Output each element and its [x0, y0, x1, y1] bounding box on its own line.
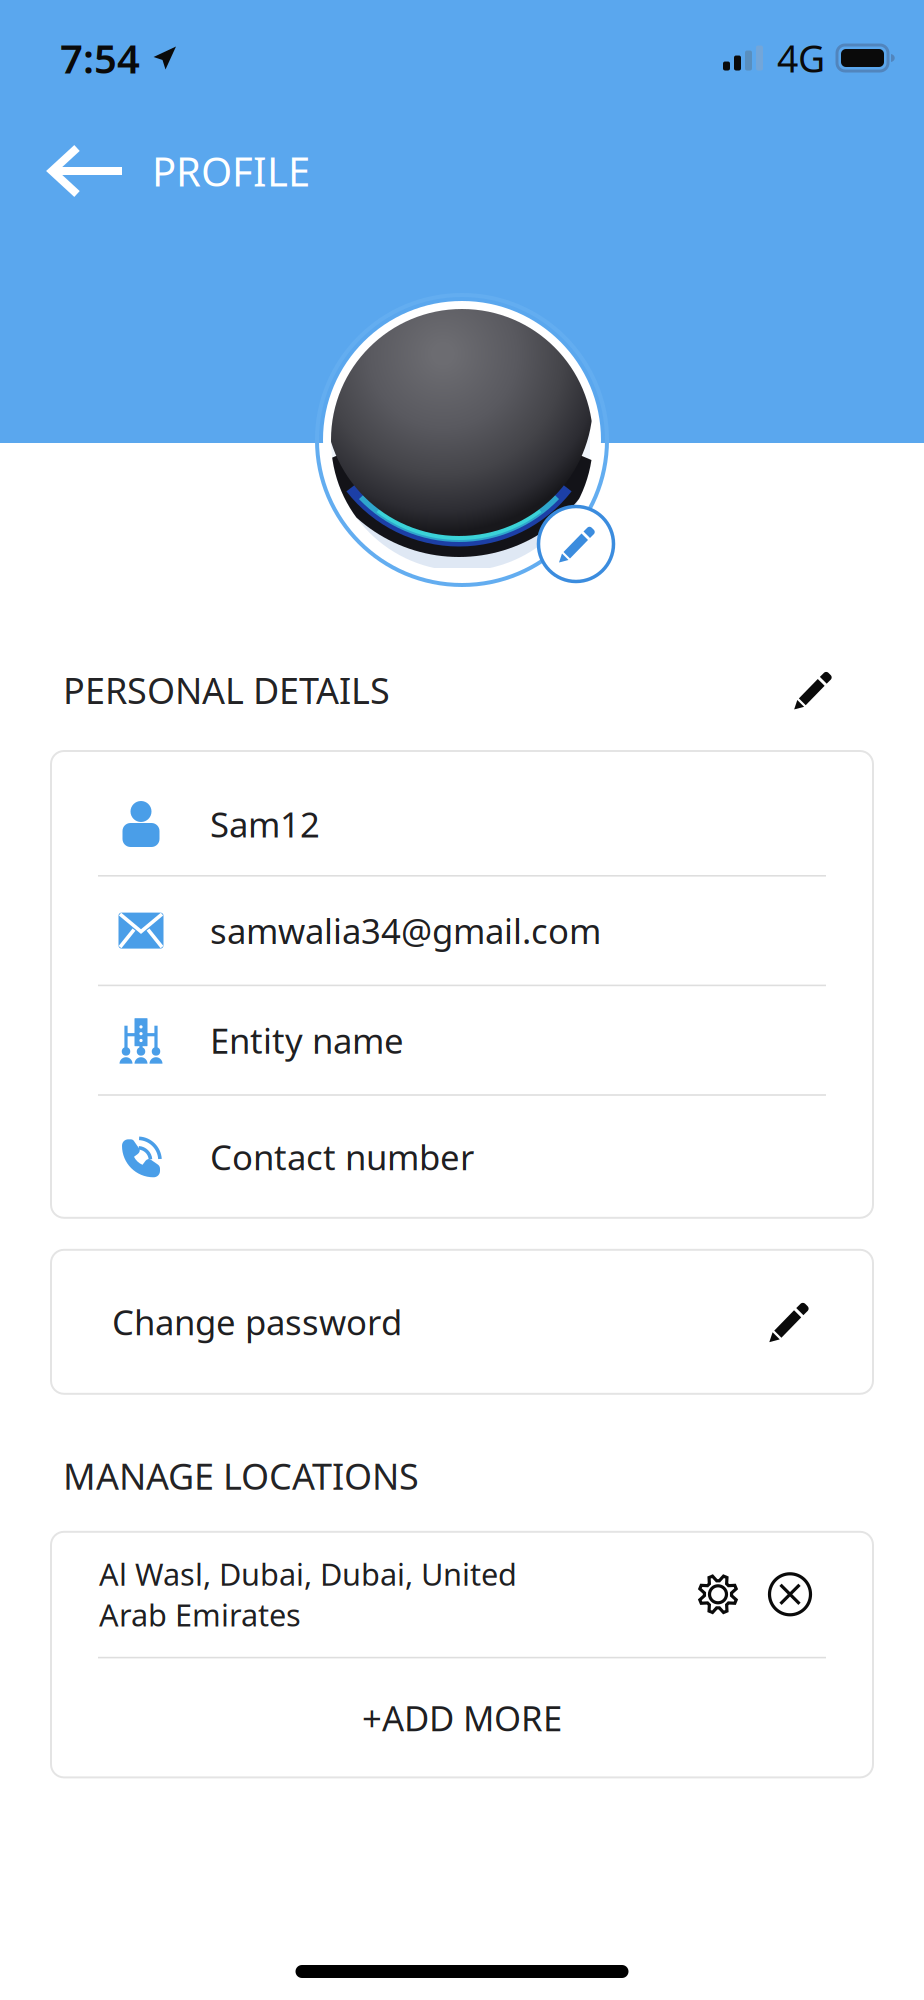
staticText: PERSONAL DETAILS: [63, 666, 390, 714]
button[interactable]: Location settings: [693, 1569, 743, 1619]
button[interactable]: +ADD MORE: [51, 1658, 873, 1777]
staticText: 4G: [777, 33, 825, 83]
staticText: 7:54: [60, 31, 140, 84]
button[interactable]: Edit personal details: [784, 662, 840, 718]
staticText: Sam12: [210, 801, 320, 847]
staticText: Entity name: [210, 1017, 404, 1063]
button[interactable]: Back: [0, 129, 134, 213]
staticText: PROFILE: [152, 144, 310, 197]
staticText: samwalia34@gmail.com: [210, 908, 601, 954]
staticText: Al Wasl, Dubai, Dubai, United Arab Emira…: [99, 1554, 517, 1635]
button[interactable]: Change profile photo: [537, 505, 615, 583]
staticText: +ADD MORE: [362, 1695, 562, 1741]
button[interactable]: Change password: [0, 1250, 924, 1394]
button[interactable]: Remove location: [765, 1569, 815, 1619]
staticText: Contact number: [210, 1134, 474, 1180]
staticText: Change password: [112, 1299, 402, 1345]
staticText: MANAGE LOCATIONS: [63, 1452, 419, 1500]
